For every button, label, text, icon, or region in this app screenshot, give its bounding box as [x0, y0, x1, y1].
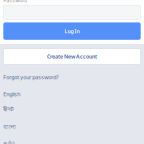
- button[interactable]: Forgot your password?: [3, 74, 58, 81]
- staticText: தமிழ்: [3, 141, 15, 144]
- staticText: Create New Account: [47, 53, 97, 60]
- staticText: Password: [3, 0, 27, 4]
- button[interactable]: English: [3, 91, 20, 98]
- staticText: বাংলা: [3, 124, 16, 131]
- staticText: Log In: [64, 28, 79, 35]
- staticText: English: [3, 91, 20, 98]
- button[interactable]: বাংলা: [3, 124, 16, 131]
- button[interactable]: हिन्दी: [3, 105, 13, 112]
- button[interactable]: Log In: [3, 22, 141, 40]
- button[interactable]: தமிழ்: [3, 141, 15, 144]
- staticText: Forgot your password?: [3, 74, 58, 81]
- staticText: हिन्दी: [3, 105, 13, 112]
- button[interactable]: Create New Account: [3, 49, 141, 64]
